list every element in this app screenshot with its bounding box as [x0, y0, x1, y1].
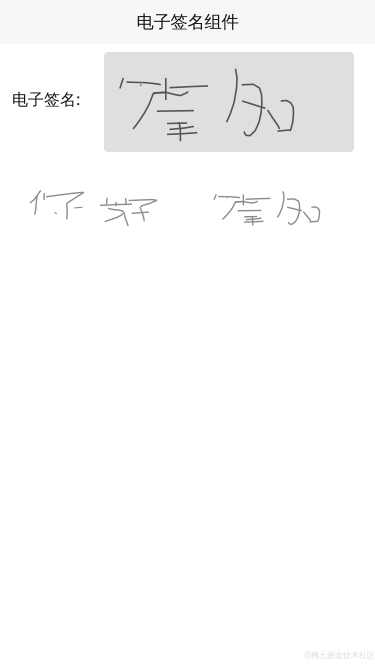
staticText: @稀土掘金技术社区	[304, 650, 375, 660]
staticText: 电子签名组件	[136, 11, 238, 33]
staticText: 电子签名:	[12, 88, 80, 110]
